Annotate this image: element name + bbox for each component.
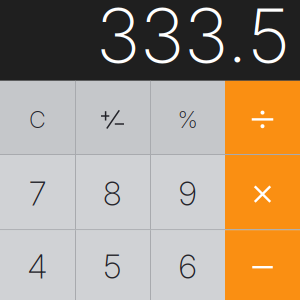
- button[interactable]: 6: [150, 230, 225, 300]
- button[interactable]: C: [0, 81, 75, 154]
- button[interactable]: 4: [0, 230, 75, 300]
- staticText: 7: [29, 174, 46, 213]
- button[interactable]: Divide: [225, 81, 300, 154]
- button[interactable]: 8: [75, 155, 150, 229]
- staticText: 6: [178, 247, 196, 286]
- button[interactable]: 5: [75, 230, 150, 300]
- staticText: 8: [103, 174, 122, 213]
- button[interactable]: %: [150, 81, 225, 154]
- staticText: 5: [103, 247, 121, 286]
- staticText: C: [29, 105, 46, 133]
- staticText: 333.5: [96, 0, 290, 80]
- button[interactable]: Plus minus: [75, 81, 150, 154]
- staticText: %: [177, 105, 197, 133]
- button[interactable]: Subtract: [225, 230, 300, 300]
- staticText: 9: [178, 174, 196, 213]
- button[interactable]: Multiply: [225, 155, 300, 229]
- button[interactable]: 9: [150, 155, 225, 229]
- button[interactable]: 7: [0, 155, 75, 229]
- staticText: 4: [27, 247, 47, 286]
